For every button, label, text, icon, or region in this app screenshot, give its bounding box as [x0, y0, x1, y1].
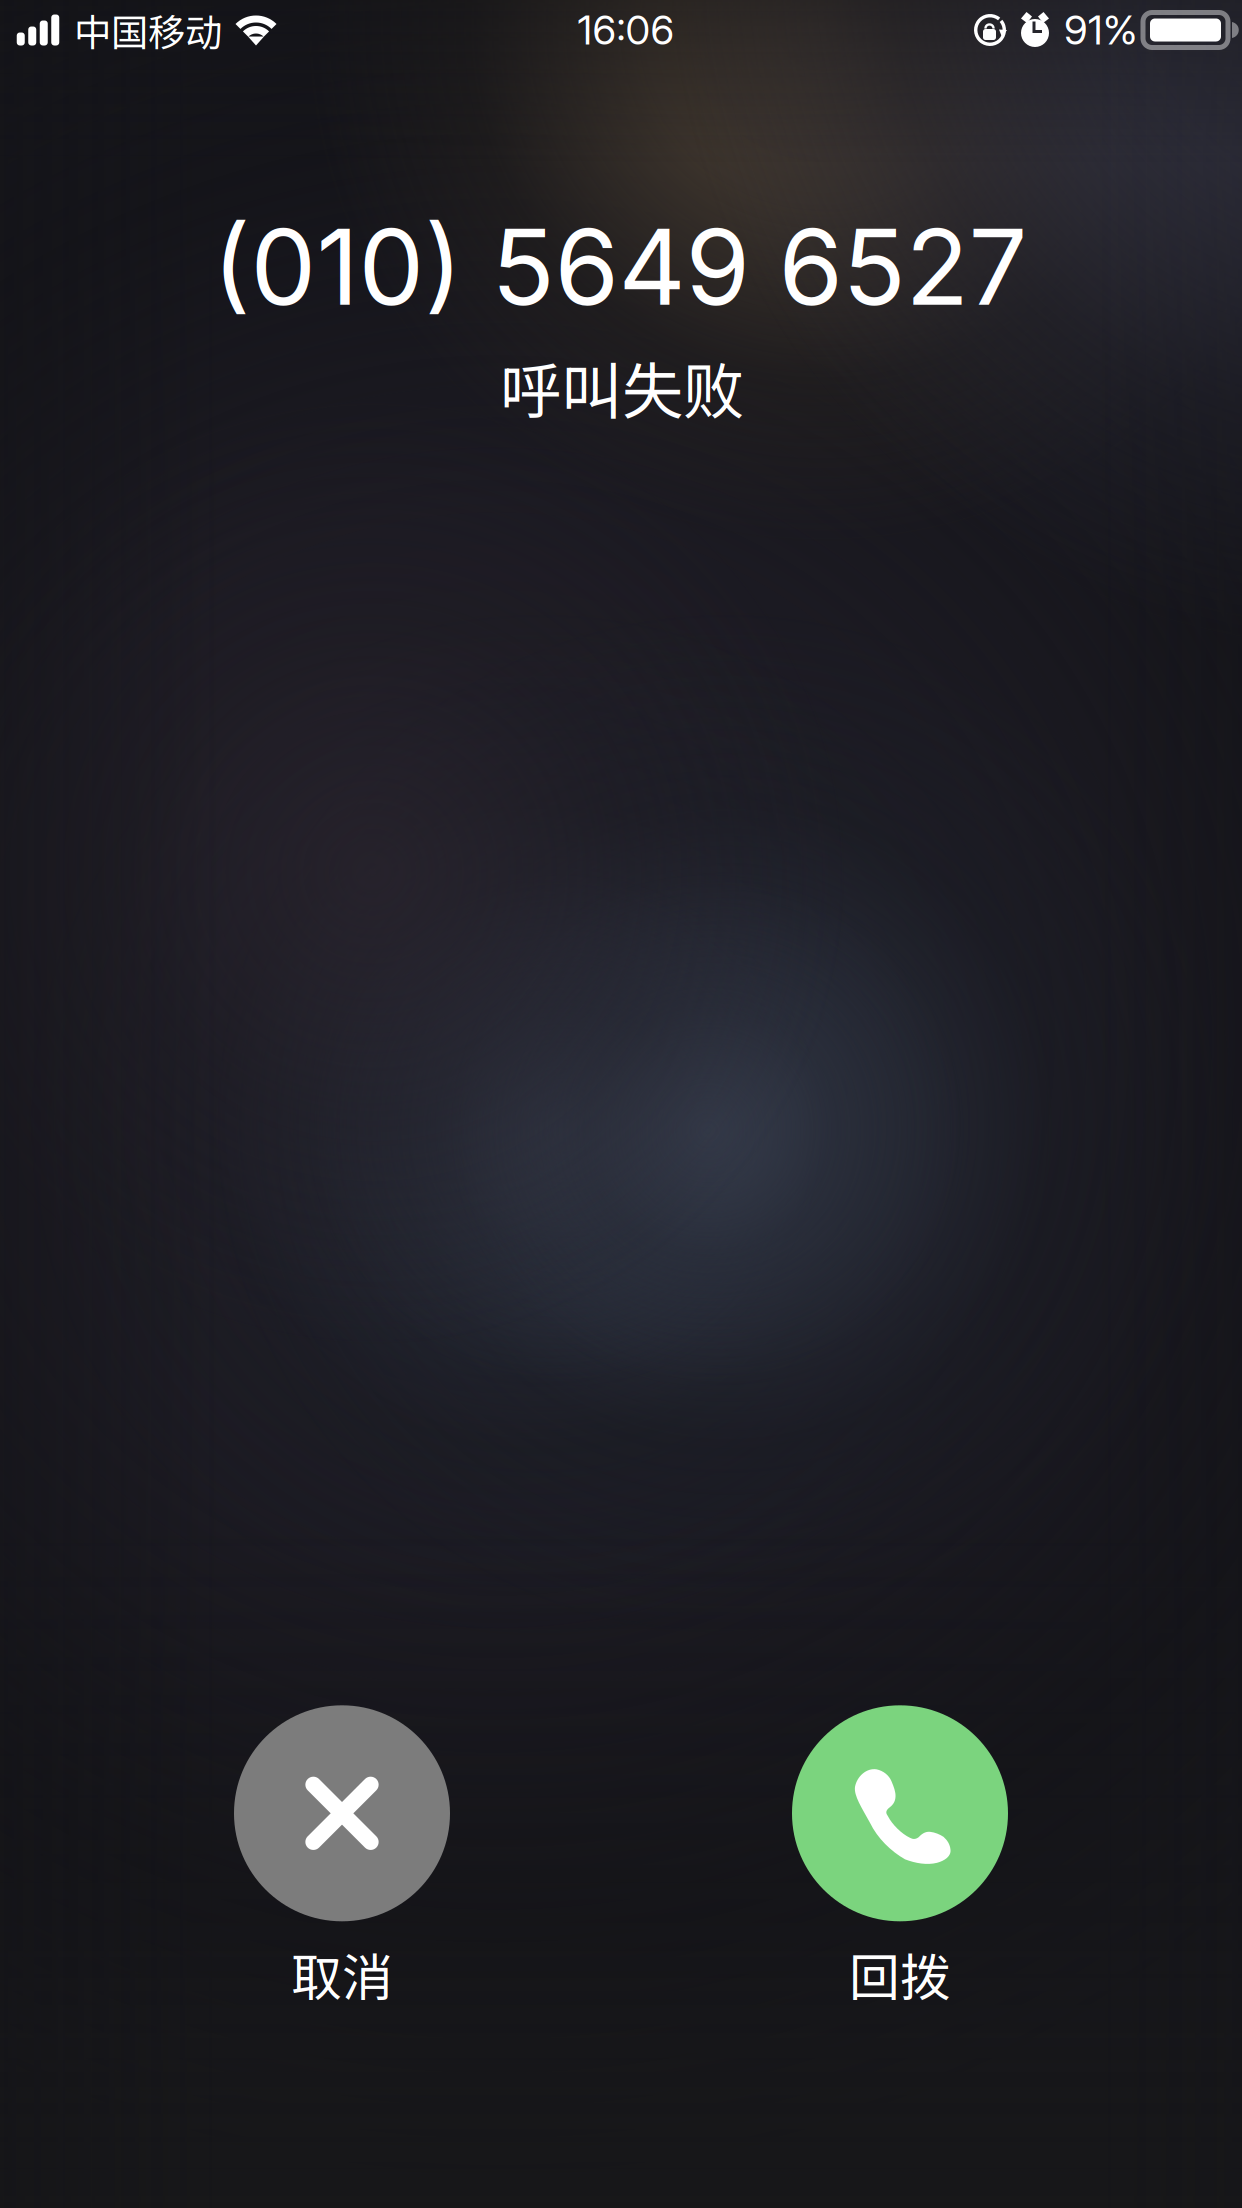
- staticText: 回拨: [849, 1937, 951, 2011]
- staticText: 91%: [1064, 6, 1137, 54]
- staticText: 16:06: [577, 6, 674, 54]
- staticText: 取消: [291, 1937, 393, 2011]
- staticText: (010) 5649 6527: [212, 204, 1027, 330]
- button[interactable]: 回拨: [760, 1705, 1040, 2011]
- button[interactable]: 取消: [202, 1705, 482, 2011]
- staticText: 中国移动: [74, 3, 222, 57]
- staticText: 呼叫失败: [500, 343, 744, 431]
